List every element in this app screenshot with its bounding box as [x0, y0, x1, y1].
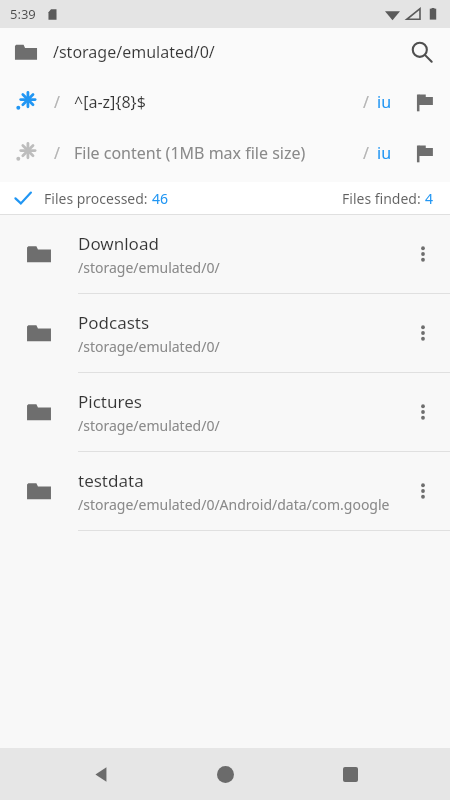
staticText: 5:39 — [10, 5, 36, 23]
staticText: 4 — [425, 189, 434, 208]
staticText: ^[a-z]{8}$ — [74, 91, 357, 113]
button[interactable]: Flags — [404, 82, 444, 122]
staticText: testdata — [78, 469, 144, 492]
staticText: / — [54, 142, 60, 164]
button[interactable]: Home — [201, 750, 249, 798]
button[interactable]: / — [0, 127, 450, 178]
staticText: /storage/emulated/0/ — [78, 416, 220, 435]
staticText: / — [54, 91, 60, 113]
button[interactable]: Pictures — [0, 373, 450, 452]
staticText: Files finded: — [342, 189, 425, 208]
button[interactable]: Back — [77, 750, 125, 798]
staticText: iu — [377, 91, 392, 113]
staticText: /storage/emulated/0/ — [78, 258, 220, 277]
staticText: Files processed: — [44, 189, 152, 208]
button[interactable]: More options — [399, 467, 447, 515]
button[interactable]: testdata — [0, 452, 450, 531]
staticText: Podcasts — [78, 311, 150, 334]
button[interactable]: /storage/emulated/0/ — [0, 28, 450, 76]
staticText: Download — [78, 232, 159, 255]
staticText: /storage/emulated/0/ — [53, 41, 398, 63]
button[interactable]: Podcasts — [0, 294, 450, 373]
button[interactable]: / — [0, 76, 450, 127]
button[interactable]: Recents — [326, 750, 374, 798]
button[interactable]: Download — [0, 215, 450, 294]
staticText: 46 — [152, 189, 169, 208]
staticText: Pictures — [78, 390, 142, 413]
staticText: /storage/emulated/0/Android/data/com.goo… — [78, 495, 390, 514]
staticText: iu — [377, 142, 392, 164]
button[interactable]: Flags — [404, 133, 444, 173]
staticText: / — [363, 91, 369, 113]
button[interactable]: More options — [399, 388, 447, 436]
staticText: / — [363, 142, 369, 164]
button[interactable]: More options — [399, 309, 447, 357]
button[interactable]: Search — [398, 28, 446, 76]
button[interactable]: More options — [399, 230, 447, 278]
staticText: /storage/emulated/0/ — [78, 337, 220, 356]
staticText: File content (1MB max file size) — [74, 142, 357, 164]
